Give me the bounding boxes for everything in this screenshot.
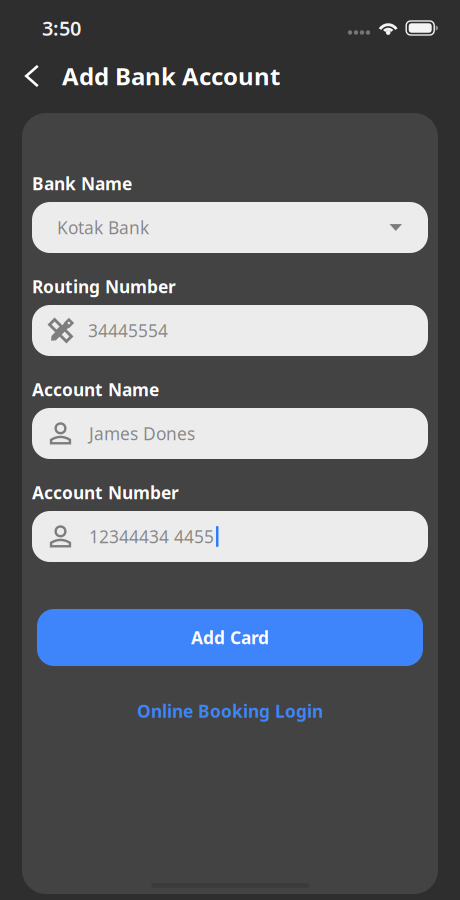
button[interactable]: Account Number — [32, 511, 428, 562]
staticText: 12344434 4455 — [89, 525, 214, 548]
button[interactable]: Add Card — [32, 609, 428, 666]
button[interactable]: Back — [14, 54, 50, 98]
button[interactable]: Account Name — [32, 408, 428, 459]
staticText: Routing Number — [32, 275, 176, 298]
staticText: Kotak Bank — [57, 216, 149, 239]
button[interactable]: Routing Number — [32, 305, 428, 356]
button[interactable]: Bank Name, Kotak Bank — [32, 202, 428, 253]
staticText: 34445554 — [88, 319, 168, 342]
staticText: Add Card — [191, 626, 269, 649]
staticText: Online Booking Login — [137, 699, 323, 722]
staticText: Bank Name — [32, 172, 132, 195]
staticText: Account Number — [32, 481, 179, 504]
staticText: Account Name — [32, 378, 159, 401]
staticText: 3:50 — [42, 15, 81, 41]
staticText: James Dones — [89, 422, 195, 445]
button[interactable]: Online Booking Login — [127, 700, 333, 722]
staticText: Add Bank Account — [62, 60, 280, 92]
